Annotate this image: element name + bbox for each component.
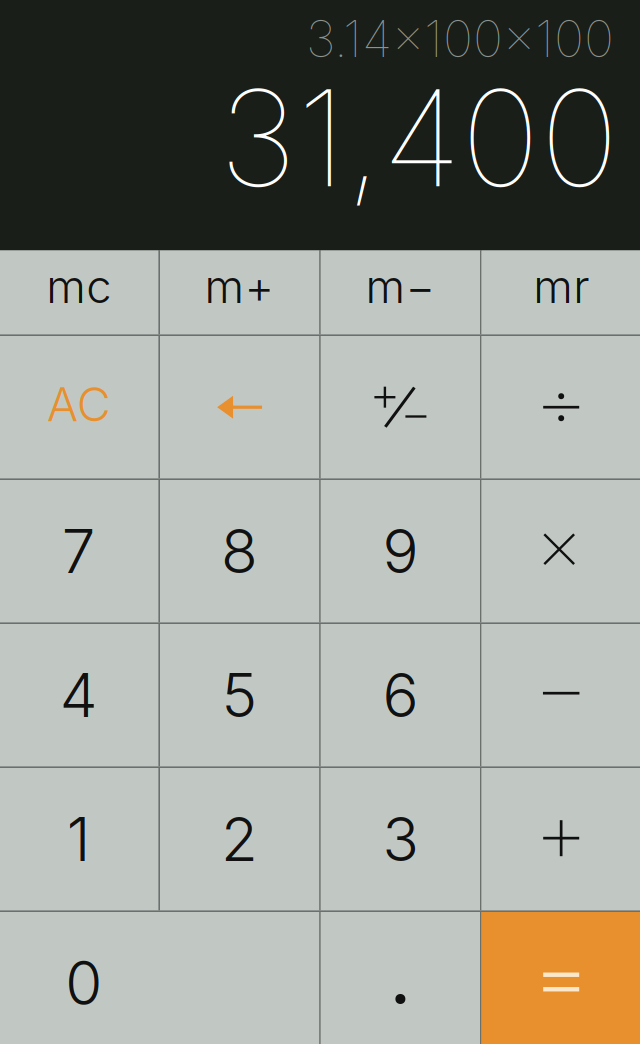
button[interactable]: 3: [321, 768, 480, 910]
staticText: 5: [222, 659, 258, 731]
button[interactable]: 8: [160, 480, 319, 622]
button[interactable]: 1: [0, 768, 158, 910]
staticText: 31,400: [219, 57, 619, 218]
button[interactable]: m+: [160, 250, 319, 334]
staticText: 4: [60, 659, 98, 731]
staticText: 3.14×100×100: [306, 8, 614, 69]
button[interactable]: Decimal point: [321, 912, 480, 1044]
button[interactable]: Plus minus: [321, 336, 480, 478]
button[interactable]: Multiply: [482, 480, 640, 622]
button[interactable]: mr: [482, 250, 640, 334]
button[interactable]: Backspace: [160, 336, 319, 478]
staticText: mr: [533, 259, 589, 314]
button[interactable]: m−: [321, 250, 480, 334]
button[interactable]: Subtract: [482, 624, 640, 766]
button[interactable]: AC: [0, 336, 158, 478]
button[interactable]: Add: [482, 768, 640, 910]
staticText: 9: [382, 515, 418, 587]
staticText: 6: [382, 659, 418, 731]
staticText: 2: [221, 803, 258, 875]
button[interactable]: Equals: [482, 912, 640, 1044]
staticText: 1: [67, 803, 91, 875]
staticText: AC: [47, 376, 111, 432]
staticText: 3: [382, 803, 418, 875]
button[interactable]: 9: [321, 480, 480, 622]
button[interactable]: 2: [160, 768, 319, 910]
button[interactable]: 6: [321, 624, 480, 766]
button[interactable]: 0: [0, 912, 319, 1044]
staticText: 8: [221, 515, 258, 587]
staticText: 7: [62, 515, 96, 587]
button[interactable]: Divide: [482, 336, 640, 478]
staticText: m+: [205, 259, 275, 314]
button[interactable]: 4: [0, 624, 158, 766]
button[interactable]: 5: [160, 624, 319, 766]
staticText: 0: [65, 947, 102, 1019]
staticText: mc: [46, 259, 111, 314]
button[interactable]: 7: [0, 480, 158, 622]
staticText: m−: [365, 259, 435, 314]
button[interactable]: mc: [0, 250, 158, 334]
